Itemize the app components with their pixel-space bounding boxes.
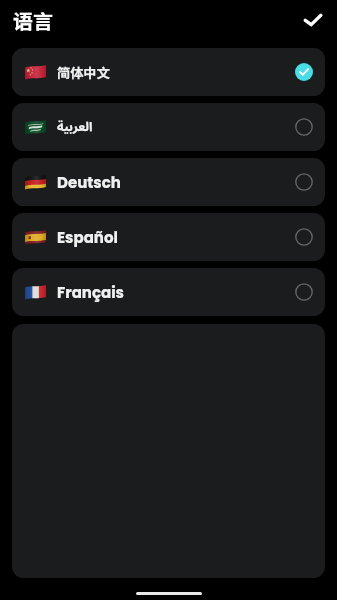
button[interactable]: Français [12,268,325,316]
button[interactable]: Español [12,213,325,261]
staticText: Deutsch [57,172,121,193]
button[interactable]: Confirm selection [296,3,330,37]
staticText: Français [57,282,124,303]
button[interactable]: 简体中文 [12,48,325,96]
staticText: 语言 [13,6,53,35]
staticText: 简体中文 [57,63,110,82]
staticText: Español [57,227,118,248]
staticText: العربية [57,114,93,140]
button[interactable]: العربية [12,103,325,151]
button[interactable]: Deutsch [12,158,325,206]
